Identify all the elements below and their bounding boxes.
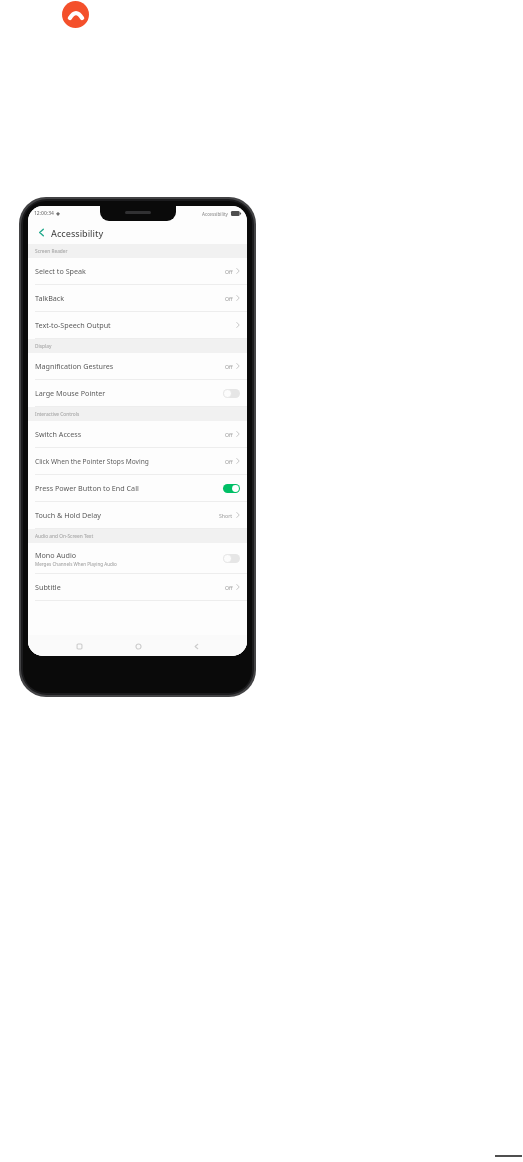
button[interactable]: Logo: [62, 1, 89, 28]
button[interactable]: Mono Audio: [28, 543, 247, 574]
staticText: Mono Audio: [35, 550, 77, 560]
staticText: Off: [225, 431, 233, 438]
button[interactable]: Press Power Button to End Call: [28, 475, 247, 502]
button[interactable]: Touch & Hold Delay: [28, 502, 247, 529]
staticText: Audio and On-Screen Text: [35, 533, 94, 540]
staticText: Display: [35, 343, 52, 350]
staticText: Off: [225, 584, 233, 591]
button[interactable]: Switch on: [223, 484, 240, 493]
staticText: Interactive Controls: [35, 411, 80, 418]
staticText: Text-to-Speech Output: [35, 320, 111, 330]
staticText: Touch & Hold Delay: [35, 510, 101, 520]
button[interactable]: Home: [130, 638, 146, 654]
button[interactable]: Recents: [71, 638, 87, 654]
staticText: Merges Channels When Playing Audio: [35, 561, 117, 567]
staticText: Accessibility: [202, 211, 228, 217]
staticText: Off: [225, 458, 233, 465]
staticText: Off: [225, 268, 233, 275]
staticText: Off: [225, 295, 233, 302]
staticText: Switch Access: [35, 429, 82, 439]
staticText: Accessibility: [51, 227, 104, 239]
button[interactable]: Back: [34, 225, 49, 240]
staticText: Short: [219, 512, 233, 519]
staticText: Select to Speak: [35, 266, 86, 276]
staticText: Off: [225, 363, 233, 370]
staticText: Large Mouse Pointer: [35, 388, 106, 398]
button[interactable]: Large Mouse Pointer: [28, 380, 247, 407]
button[interactable]: Text-to-Speech Output: [28, 312, 247, 339]
button[interactable]: Select to Speak: [28, 258, 247, 285]
staticText: TalkBack: [35, 293, 65, 303]
button[interactable]: Click When the Pointer Stops Moving: [28, 448, 247, 475]
button[interactable]: Switch off: [223, 389, 240, 398]
staticText: Click When the Pointer Stops Moving: [35, 457, 149, 466]
button[interactable]: Back: [188, 638, 204, 654]
button[interactable]: TalkBack: [28, 285, 247, 312]
button[interactable]: Magnification Gestures: [28, 353, 247, 380]
button[interactable]: Subtitle: [28, 574, 247, 601]
button[interactable]: Switch off: [223, 554, 240, 563]
staticText: 12:00:34: [34, 210, 54, 217]
staticText: Subtitle: [35, 582, 61, 592]
staticText: Screen Reader: [35, 248, 68, 255]
staticText: Press Power Button to End Call: [35, 483, 139, 493]
button[interactable]: Switch Access: [28, 421, 247, 448]
staticText: Magnification Gestures: [35, 361, 114, 371]
